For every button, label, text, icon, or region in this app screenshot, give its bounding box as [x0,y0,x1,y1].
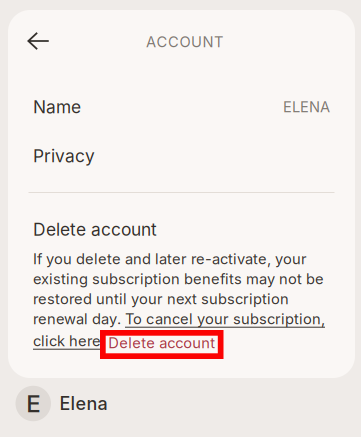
button[interactable]: Delete account [100,330,223,359]
staticText: Elena [59,393,107,414]
button[interactable]: Back [16,24,60,58]
staticText: ELENA [283,98,330,116]
staticText: Name [33,96,81,117]
staticText: restored until your next subscription [33,290,289,308]
button[interactable]: Privacy [8,134,355,178]
staticText: Delete account [33,219,157,240]
staticText: To cancel your subscription, [125,310,325,328]
staticText: renewal day. [33,310,125,328]
button[interactable]: E [0,379,361,428]
staticText: click here [33,332,101,350]
button[interactable]: click here [33,332,101,350]
button[interactable]: To cancel your subscription, [125,310,325,328]
staticText: If you delete and later re-activate, you… [33,250,307,268]
staticText: Delete account [108,334,215,352]
staticText: ACCOUNT [146,33,223,51]
staticText: Privacy [33,145,95,166]
staticText: E [26,389,40,418]
staticText: existing subscription benefits may not b… [33,270,324,288]
button[interactable]: Name [8,85,355,129]
